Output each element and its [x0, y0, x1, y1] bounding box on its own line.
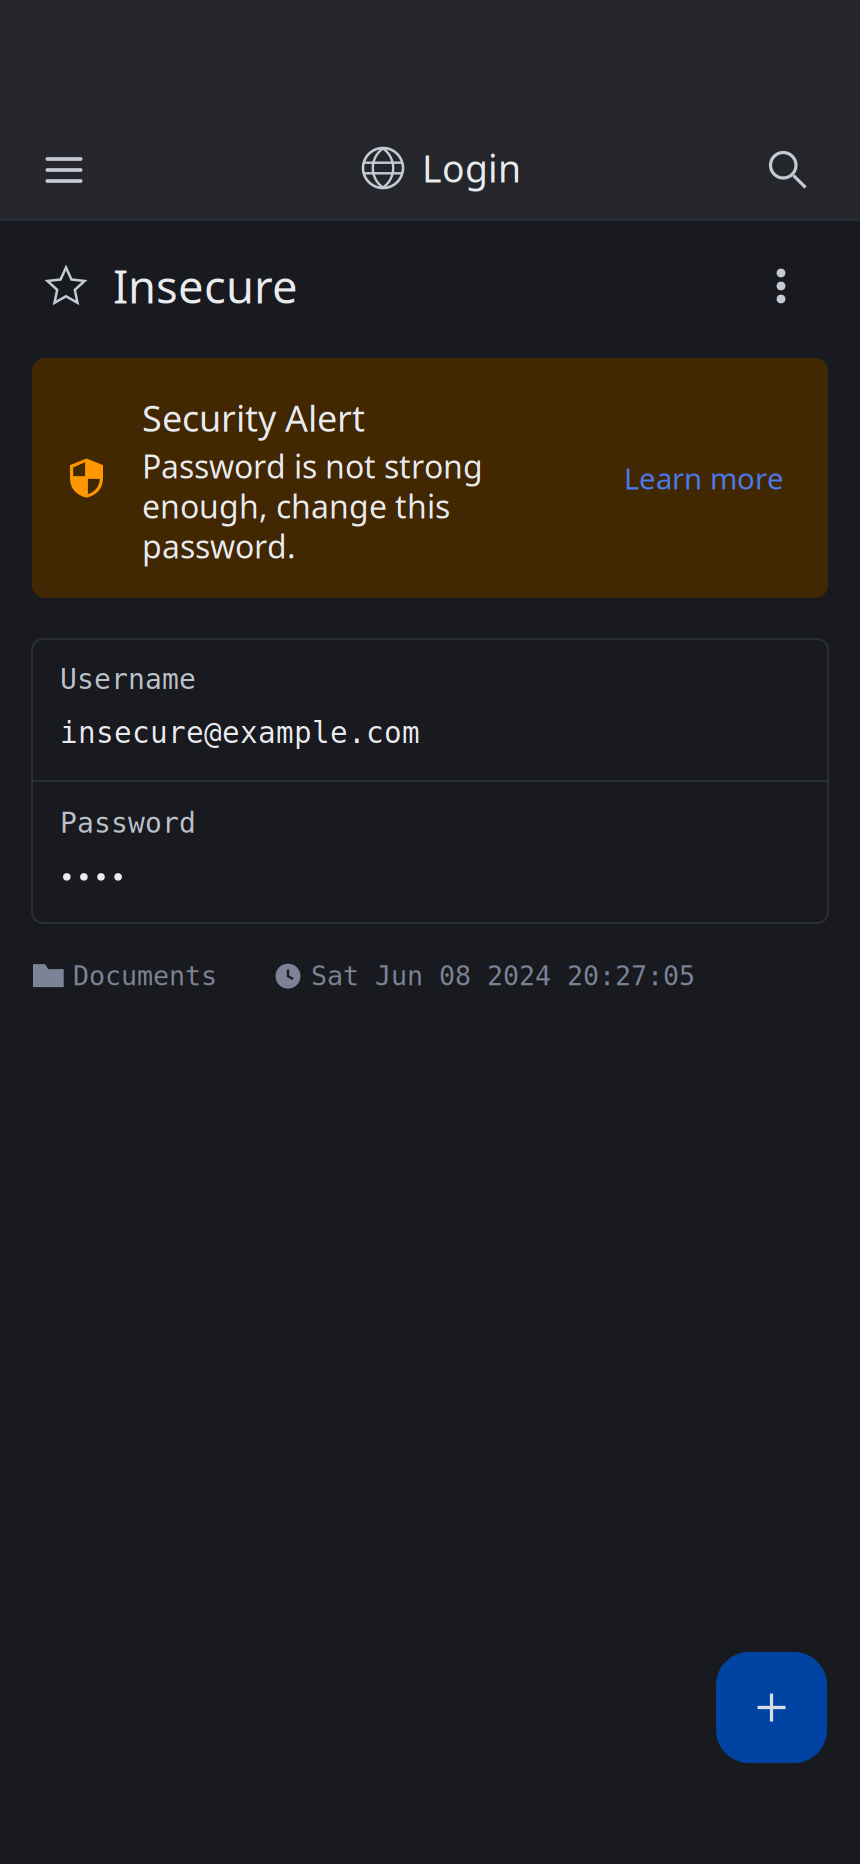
staticText: password. [142, 525, 296, 567]
button[interactable]: More options [758, 263, 804, 309]
staticText: Login [422, 143, 521, 193]
staticText: insecure@example.com [60, 716, 420, 749]
button[interactable]: Learn more [624, 455, 784, 501]
button[interactable]: Add [716, 1652, 827, 1763]
button[interactable]: Insecure [94, 248, 306, 324]
staticText: Documents [73, 961, 217, 991]
staticText: Learn more [624, 458, 784, 497]
button[interactable]: Documents [33, 961, 217, 991]
staticText: Sat Jun 08 2024 20:27:05 [311, 961, 695, 991]
staticText: enough, change this [142, 485, 450, 527]
button[interactable]: Menu [42, 148, 86, 192]
staticText: Password [60, 807, 196, 839]
staticText: Security Alert [142, 394, 365, 442]
button[interactable]: Password [32, 782, 828, 923]
button[interactable]: Search [769, 151, 807, 189]
staticText: Insecure [113, 256, 298, 316]
staticText: Password is not strong [142, 445, 483, 487]
staticText: Username [60, 663, 196, 695]
button[interactable]: Favorite [38, 260, 94, 312]
button[interactable]: Username [32, 639, 828, 780]
